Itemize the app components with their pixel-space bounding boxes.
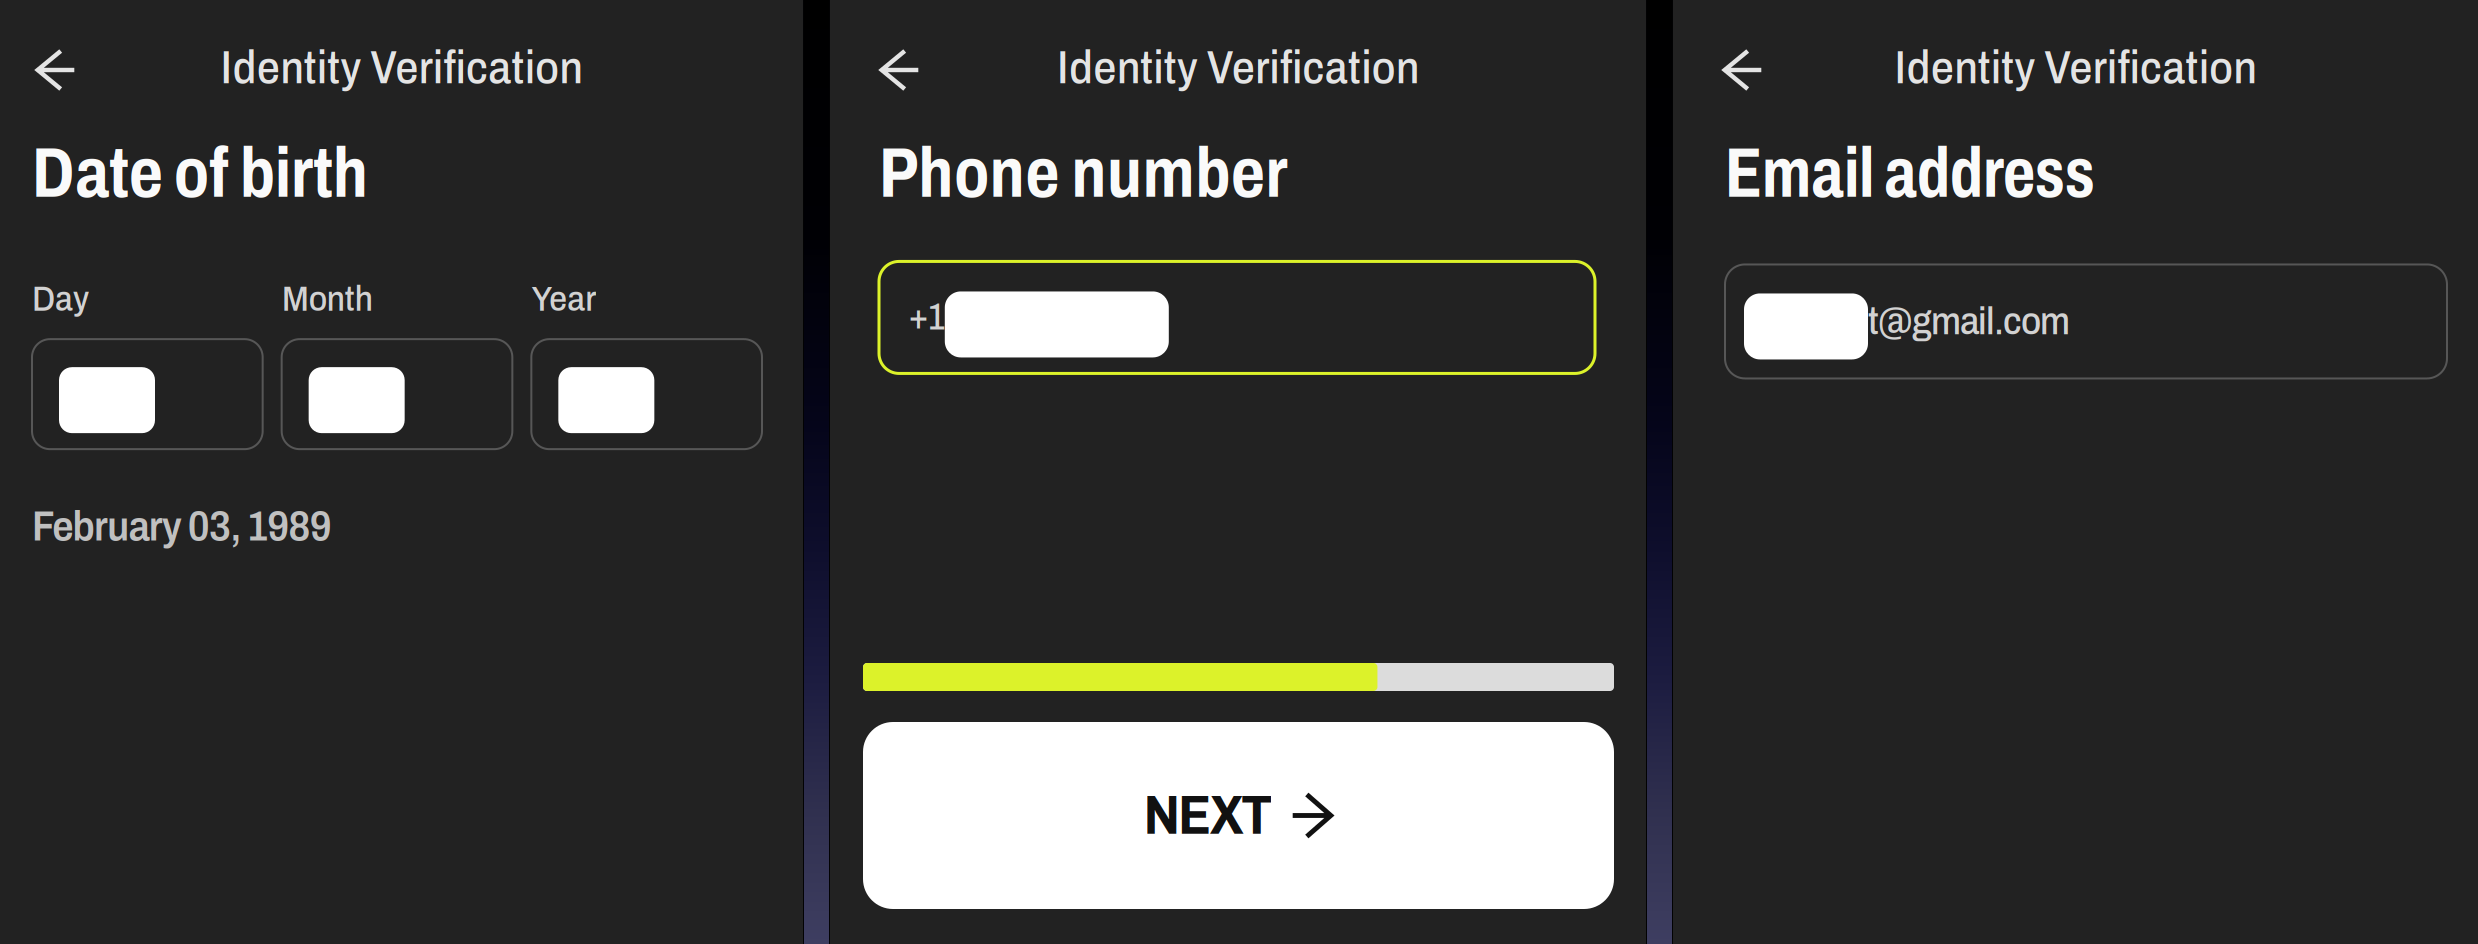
button[interactable]: t@gmail.com: [1725, 264, 2447, 378]
button[interactable]: Back: [23, 37, 89, 103]
staticText: Identity Verification: [1057, 43, 1419, 93]
button[interactable]: Back: [1710, 37, 1776, 103]
staticText: February 03, 1989: [32, 503, 332, 550]
staticText: Day: [32, 280, 89, 318]
button[interactable]: +1: [879, 261, 1595, 373]
staticText: Month: [282, 280, 373, 318]
staticText: +1: [908, 298, 945, 337]
staticText: Date of birth: [32, 136, 368, 211]
staticText: Identity Verification: [1894, 43, 2256, 93]
staticText: Email address: [1725, 136, 2095, 211]
button[interactable]: Back: [867, 37, 933, 103]
staticText: Identity Verification: [220, 43, 582, 93]
staticText: NEXT: [1144, 786, 1272, 845]
button[interactable]: [282, 339, 512, 449]
button[interactable]: NEXT: [863, 722, 1614, 909]
button[interactable]: [32, 339, 263, 449]
staticText: Year: [531, 280, 596, 318]
staticText: t@gmail.com: [1868, 300, 2070, 342]
button[interactable]: [531, 339, 762, 449]
staticText: Phone number: [879, 136, 1288, 211]
